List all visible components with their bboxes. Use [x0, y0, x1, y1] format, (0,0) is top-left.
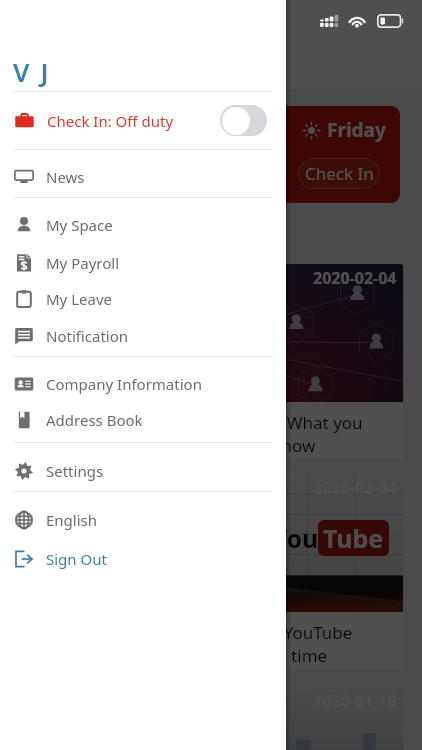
button[interactable]: My Space [0, 206, 286, 243]
button[interactable]: Check In: Off duty [0, 92, 286, 149]
staticText: Company Information [46, 374, 202, 394]
staticText: My Space [46, 215, 113, 235]
staticText: Check In [305, 162, 374, 185]
staticText: Friday [327, 117, 386, 143]
staticText: News [46, 167, 85, 187]
staticText: English [46, 510, 98, 530]
button[interactable]: You [22, 474, 403, 669]
button[interactable]: Address Book [0, 401, 286, 438]
button[interactable]: 2020-01-16 [22, 687, 403, 750]
button[interactable]: Notification [0, 317, 286, 354]
staticText: 2020-02-04 [313, 477, 397, 499]
staticText: Address Book [46, 410, 143, 430]
staticText: Facebook CEO Zuck breaks out YouTube rev… [34, 621, 403, 667]
button[interactable]: News [0, 158, 286, 195]
button[interactable]: English [0, 501, 286, 538]
button[interactable]: Sign Out [0, 540, 286, 577]
staticText: Check In: Off duty [47, 111, 174, 131]
button[interactable]: My Payroll [0, 244, 286, 281]
staticText: My Payroll [46, 253, 120, 273]
button[interactable]: Settings [0, 452, 286, 489]
staticText: My Leave [46, 289, 112, 309]
staticText: 2020-02-04 [313, 267, 397, 289]
button[interactable]: 2020-02-04 [22, 264, 403, 459]
button[interactable]: Toggle duty status [220, 105, 267, 136]
button[interactable]: Check In [298, 158, 380, 189]
button[interactable]: Company Information [0, 365, 286, 402]
staticText: 2020-01-16 [313, 690, 397, 712]
button[interactable]: My Leave [0, 280, 286, 317]
staticText: Next-generation HRM Systems: What you sh… [34, 411, 403, 457]
staticText: Notification [46, 326, 129, 346]
staticText: Sign Out [46, 549, 107, 569]
staticText: Settings [46, 461, 104, 481]
staticText: You [272, 521, 319, 555]
staticText: VJ [13, 54, 60, 89]
staticText: Tube [323, 521, 384, 555]
